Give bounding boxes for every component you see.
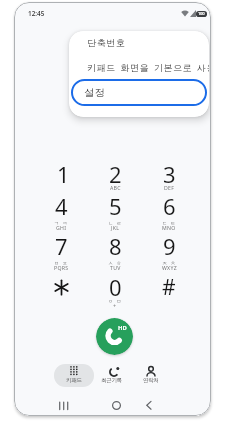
staticText: 4 <box>55 191 68 215</box>
staticText: 키패드 <box>66 377 82 384</box>
staticText: 연락처 <box>143 377 159 384</box>
staticText: 설정 <box>84 86 105 99</box>
staticText: ㅂ ㅍ <box>54 259 69 266</box>
staticText: 2 <box>109 159 122 183</box>
button[interactable]: 7 <box>35 234 87 276</box>
staticText: 1 <box>57 159 70 183</box>
staticText: 12:45 <box>28 9 45 18</box>
staticText: ㅇ ㅁ <box>108 297 123 304</box>
button[interactable]: 연락처 <box>137 363 165 387</box>
staticText: ㅅ ㅎ <box>108 259 123 266</box>
staticText: 7 <box>55 231 68 255</box>
button[interactable]: 9 <box>143 234 195 276</box>
staticText: 3 <box>163 159 176 183</box>
button[interactable]: 1 <box>35 154 87 194</box>
button[interactable]: 설정 <box>71 79 207 106</box>
button[interactable]: 3 <box>143 154 195 194</box>
staticText: 단축번호 <box>87 37 125 48</box>
button[interactable]: 5 <box>89 194 141 236</box>
button[interactable]: 4 <box>35 194 87 236</box>
staticText: 100 <box>198 11 205 17</box>
staticText: 8 <box>109 231 122 255</box>
staticText: WXYZ <box>162 264 177 271</box>
staticText: TUV <box>110 264 121 271</box>
staticText: ㄴ ㄹ <box>108 219 123 226</box>
button[interactable] <box>35 274 87 312</box>
button[interactable] <box>108 398 124 413</box>
staticText: # <box>162 273 176 297</box>
button[interactable] <box>141 398 155 413</box>
staticText: GHI <box>56 224 67 231</box>
button[interactable]: 단축번호 <box>69 31 209 53</box>
staticText: 6 <box>163 191 176 215</box>
staticText: ㄷ ㅌ <box>162 219 177 226</box>
button[interactable]: 0 <box>89 274 141 312</box>
staticText: JKL <box>111 224 120 231</box>
button[interactable]: 8 <box>89 234 141 276</box>
staticText: MNO <box>162 224 176 231</box>
staticText: 9 <box>163 231 176 255</box>
staticText: ABC <box>110 184 121 191</box>
staticText: 0 <box>109 272 122 296</box>
staticText: PQRS <box>54 264 69 271</box>
button[interactable] <box>55 398 71 413</box>
button[interactable]: 6 <box>143 194 195 236</box>
staticText: + <box>113 302 117 309</box>
button[interactable]: # <box>143 274 195 312</box>
staticText: DEF <box>164 184 175 191</box>
staticText: HD <box>118 324 127 332</box>
button[interactable]: 키패드 화면을 기본으로 사용 <box>69 55 209 79</box>
button[interactable]: 2 <box>89 154 141 194</box>
button[interactable]: 최근기록 <box>96 363 126 387</box>
staticText: 5 <box>109 191 122 215</box>
staticText: ㅈ ㅊ <box>162 259 177 266</box>
staticText: ㄱ ㅋ <box>54 219 69 226</box>
button[interactable]: HD <box>96 318 133 355</box>
staticText: 최근기록 <box>101 377 122 384</box>
staticText: 키패드 화면을 기본으로 사용 <box>87 61 209 73</box>
button[interactable]: 키패드 <box>54 364 94 387</box>
